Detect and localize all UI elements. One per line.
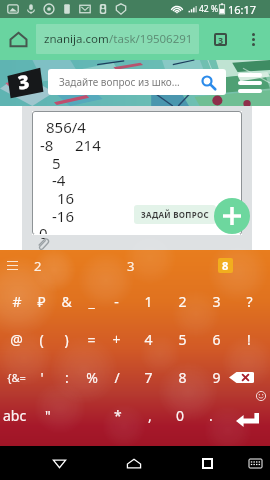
staticText: _ bbox=[88, 292, 95, 311]
staticText: abc bbox=[3, 406, 27, 425]
button[interactable]: * bbox=[101, 397, 134, 433]
button[interactable]: % bbox=[79, 359, 104, 395]
staticText: & bbox=[61, 292, 72, 311]
staticText: ! bbox=[247, 330, 251, 349]
staticText: ₽ bbox=[37, 292, 46, 311]
button[interactable]: ₽ bbox=[29, 283, 54, 319]
staticText: 8 bbox=[222, 258, 229, 273]
staticText: : bbox=[65, 368, 69, 387]
button[interactable]: / bbox=[104, 359, 129, 395]
button[interactable]: More options bbox=[240, 26, 266, 52]
button[interactable]: 2 bbox=[24, 254, 52, 277]
staticText: 42 % bbox=[199, 3, 218, 15]
staticText: 6 bbox=[212, 330, 221, 349]
staticText: ) bbox=[64, 330, 69, 349]
staticText: - bbox=[114, 292, 119, 311]
button[interactable]: 3 bbox=[117, 254, 145, 277]
staticText: " bbox=[45, 406, 51, 425]
staticText: # bbox=[12, 292, 22, 311]
staticText: 3 bbox=[212, 292, 221, 311]
button[interactable]: : bbox=[54, 359, 79, 395]
staticText: , bbox=[148, 406, 152, 425]
staticText: Задайте вопрос из шко... bbox=[59, 75, 180, 89]
staticText: % bbox=[86, 368, 98, 387]
staticText: @ bbox=[10, 330, 23, 349]
button[interactable]: 2 bbox=[165, 283, 199, 319]
button[interactable]: @ bbox=[4, 321, 29, 357]
staticText: . bbox=[209, 406, 213, 425]
button[interactable]: Add bbox=[214, 198, 250, 234]
staticText: 0 bbox=[39, 223, 48, 243]
staticText: ( bbox=[39, 330, 44, 349]
staticText: * bbox=[114, 406, 122, 425]
staticText: 4 bbox=[144, 330, 153, 349]
button[interactable]: 7 bbox=[131, 359, 165, 395]
button[interactable]: Recents bbox=[193, 449, 221, 477]
staticText: /task/19506291 bbox=[109, 31, 193, 47]
button[interactable]: Menu bbox=[236, 69, 264, 97]
staticText: 8 bbox=[178, 368, 187, 387]
staticText: -8 bbox=[40, 135, 54, 155]
button[interactable]: Attach file bbox=[36, 237, 49, 250]
staticText: -16 bbox=[52, 206, 74, 226]
staticText: 16:17 bbox=[228, 2, 257, 17]
button[interactable]: # bbox=[4, 283, 29, 319]
button[interactable]: 9 bbox=[199, 359, 233, 395]
button[interactable]: 3 bbox=[199, 283, 233, 319]
staticText: znanija.com bbox=[44, 31, 109, 47]
staticText: 856/4 bbox=[46, 117, 86, 137]
staticText: 3 bbox=[127, 257, 135, 275]
button[interactable]: ( bbox=[29, 321, 54, 357]
button[interactable]: , bbox=[134, 397, 165, 433]
button[interactable]: Home bbox=[2, 23, 34, 55]
staticText: 7 bbox=[144, 368, 153, 387]
button[interactable]: Tabs bbox=[207, 26, 233, 52]
staticText: 16 bbox=[57, 188, 75, 208]
button[interactable]: Keyboard settings bbox=[1, 256, 23, 275]
button[interactable]: Switch keyboard bbox=[241, 449, 269, 477]
staticText: 214 bbox=[75, 135, 101, 155]
staticText: ' bbox=[40, 368, 44, 387]
button[interactable]: = bbox=[79, 321, 104, 357]
button[interactable]: abc bbox=[0, 397, 30, 433]
staticText: 5 bbox=[52, 153, 61, 173]
staticText: 3 bbox=[218, 34, 224, 46]
button[interactable]: Backspace bbox=[202, 359, 266, 395]
staticText: 1 bbox=[144, 292, 153, 311]
staticText: 9 bbox=[212, 368, 221, 387]
staticText: 5 bbox=[178, 330, 187, 349]
staticText: 2 bbox=[34, 257, 42, 275]
button[interactable]: ЗАДАЙ ВОПРОС bbox=[134, 205, 216, 224]
button[interactable]: ' bbox=[29, 359, 54, 395]
button[interactable]: {&= bbox=[4, 359, 29, 395]
button[interactable]: " bbox=[30, 397, 65, 433]
button[interactable]: Space bbox=[65, 397, 101, 433]
button[interactable]: 8 bbox=[218, 258, 233, 273]
button[interactable]: 8 bbox=[165, 359, 199, 395]
button[interactable]: 0 bbox=[165, 397, 196, 433]
button[interactable]: ? bbox=[232, 283, 266, 319]
staticText: = bbox=[87, 330, 96, 349]
button[interactable]: Back bbox=[45, 449, 73, 477]
button[interactable]: Znanija logo bbox=[5, 66, 45, 99]
button[interactable]: - bbox=[104, 283, 129, 319]
button[interactable]: Enter bbox=[225, 397, 270, 433]
button[interactable]: Home bbox=[120, 449, 148, 477]
button[interactable]: 1 bbox=[131, 283, 165, 319]
button[interactable]: 4 bbox=[131, 321, 165, 357]
staticText: 3 bbox=[16, 68, 32, 96]
button[interactable]: 6 bbox=[199, 321, 233, 357]
button[interactable]: 5 bbox=[165, 321, 199, 357]
button[interactable]: & bbox=[54, 283, 79, 319]
button[interactable]: znanija.com bbox=[36, 24, 199, 54]
button[interactable]: ! bbox=[232, 321, 266, 357]
staticText: ? bbox=[246, 292, 253, 311]
button[interactable]: ) bbox=[54, 321, 79, 357]
staticText: {&= bbox=[7, 370, 26, 385]
staticText: -4 bbox=[52, 170, 66, 190]
button[interactable]: + bbox=[104, 321, 129, 357]
button[interactable]: _ bbox=[79, 283, 104, 319]
button[interactable]: . bbox=[196, 397, 225, 433]
staticText: + bbox=[112, 330, 121, 349]
button[interactable]: Задайте вопрос из шко... bbox=[48, 69, 226, 95]
